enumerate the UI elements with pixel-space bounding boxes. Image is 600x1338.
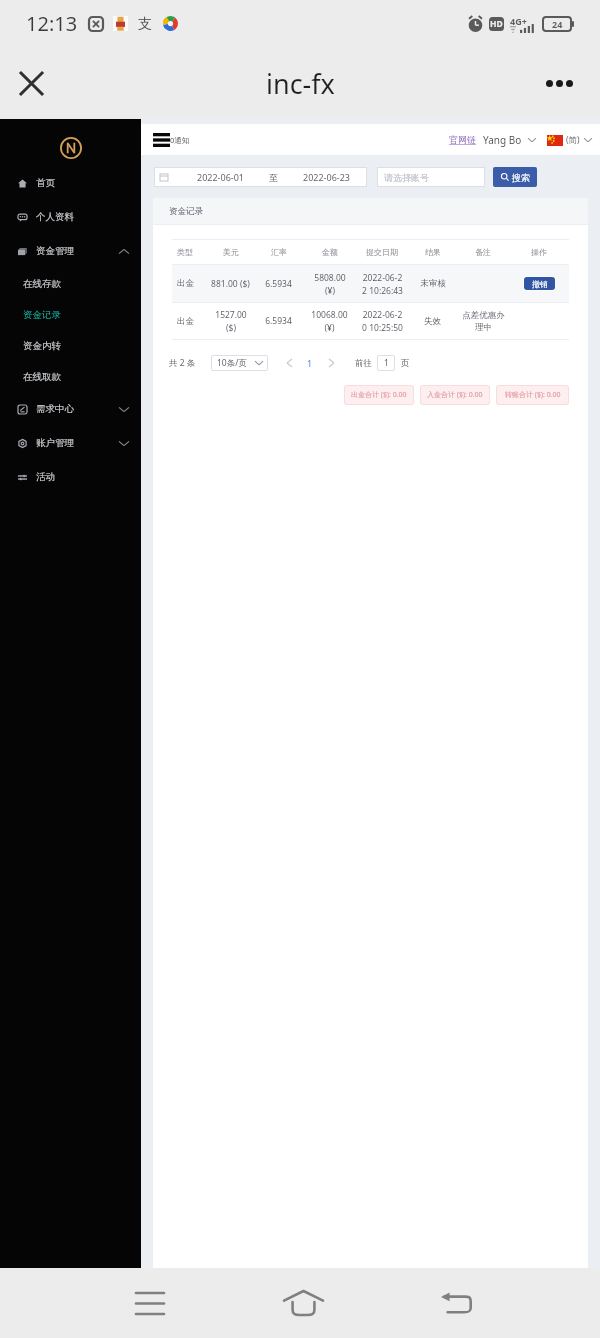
button[interactable]: 请选择账号 xyxy=(377,167,485,187)
button[interactable]: 撤销 xyxy=(524,277,555,290)
staticText: 入金合计 ($): 0.00 xyxy=(427,390,483,400)
button[interactable]: 搜索 xyxy=(493,167,537,187)
staticText: 前往 xyxy=(355,358,372,369)
staticText: 撤销 xyxy=(532,279,548,289)
staticText: 出金 xyxy=(177,316,194,327)
staticText: 2022-06-01 xyxy=(197,171,244,183)
button[interactable]: 10条/页 xyxy=(211,355,268,371)
staticText: inc-fx xyxy=(266,65,335,102)
staticText: 搜索 xyxy=(512,172,530,183)
staticText: 4G+ xyxy=(510,15,527,27)
button[interactable]: 出金合计 ($): 0.00 xyxy=(344,385,414,405)
staticText: 汇率 xyxy=(271,247,287,257)
staticText: 账户管理 xyxy=(36,437,74,449)
button[interactable]: 转账合计 ($): 0.00 xyxy=(496,385,569,405)
button[interactable]: 资金记录 xyxy=(0,299,141,330)
staticText: 资金管理 xyxy=(36,245,74,257)
button[interactable]: Recents xyxy=(73,1268,226,1338)
staticText: 类型 xyxy=(177,247,193,257)
staticText: 转账合计 ($): 0.00 xyxy=(505,390,561,400)
button[interactable]: Back xyxy=(380,1268,534,1338)
staticText: 请选择账号 xyxy=(384,172,429,183)
staticText: 资金记录 xyxy=(23,309,61,321)
staticText: 881.00 ($) xyxy=(211,278,250,290)
staticText: 支 xyxy=(138,15,152,33)
staticText: 10068.00 (¥) xyxy=(311,309,348,333)
staticText: 资金记录 xyxy=(169,206,203,217)
staticText: 失效 xyxy=(424,316,441,327)
staticText: 0通知 xyxy=(170,135,190,145)
staticText: HD xyxy=(490,18,503,30)
staticText: 5808.00 (¥) xyxy=(314,272,346,296)
button[interactable]: 2022-06-01 xyxy=(154,167,367,187)
staticText: 需求中心 xyxy=(36,403,74,415)
staticText: 操作 xyxy=(531,247,547,257)
staticText: 2022-06-2 2 10:26:43 xyxy=(362,272,403,296)
button[interactable]: Yang Bo xyxy=(483,133,536,147)
staticText: 出金合计 ($): 0.00 xyxy=(351,390,407,400)
staticText: (简) xyxy=(566,134,580,146)
staticText: 结果 xyxy=(425,247,441,257)
staticText: 1 xyxy=(384,357,389,369)
staticText: 2022-06-2 0 10:25:50 xyxy=(362,309,403,333)
staticText: 12:13 xyxy=(26,10,78,37)
button[interactable]: 需求中心 xyxy=(0,392,141,426)
button[interactable]: 官网链 xyxy=(449,134,476,145)
staticText: 在线取款 xyxy=(23,371,61,383)
staticText: 首页 xyxy=(36,177,55,189)
button[interactable]: 首页 xyxy=(0,166,141,200)
button[interactable]: Menu xyxy=(153,133,170,147)
staticText: 金额 xyxy=(322,247,338,257)
staticText: Yang Bo xyxy=(483,133,522,147)
staticText: 2022-06-23 xyxy=(303,171,350,183)
button[interactable]: (简) xyxy=(547,134,592,146)
staticText: 个人资料 xyxy=(36,211,74,223)
staticText: 24 xyxy=(552,18,563,30)
staticText: 资金内转 xyxy=(23,340,61,352)
staticText: 1 xyxy=(307,357,313,369)
staticText: 10条/页 xyxy=(217,357,247,369)
staticText: 备注 xyxy=(475,247,491,257)
button[interactable]: Home xyxy=(226,1268,380,1338)
staticText: 未审核 xyxy=(420,278,446,289)
button[interactable]: Previous page xyxy=(283,356,295,370)
staticText: 活动 xyxy=(36,471,55,483)
staticText: 1527.00 ($) xyxy=(215,309,247,333)
button[interactable]: 资金内转 xyxy=(0,330,141,361)
button[interactable]: 在线存款 xyxy=(0,268,141,299)
button[interactable]: 账户管理 xyxy=(0,426,141,460)
button[interactable]: 个人资料 xyxy=(0,200,141,234)
button[interactable]: 在线取款 xyxy=(0,361,141,392)
staticText: 出金 xyxy=(177,278,194,289)
button[interactable]: 入金合计 ($): 0.00 xyxy=(420,385,490,405)
staticText: 至 xyxy=(269,172,278,183)
staticText: 6.5934 xyxy=(265,278,292,290)
staticText: 6.5934 xyxy=(265,315,292,327)
staticText: 共 2 条 xyxy=(169,357,196,369)
button[interactable]: More options xyxy=(537,61,581,105)
button[interactable]: 资金管理 xyxy=(0,234,141,268)
button[interactable]: 活动 xyxy=(0,460,141,494)
button[interactable]: Next page xyxy=(325,356,337,370)
staticText: 美元 xyxy=(223,247,239,257)
staticText: 点差优惠办 理中 xyxy=(462,310,505,333)
staticText: 提交日期 xyxy=(366,247,398,257)
staticText: 页 xyxy=(401,358,410,369)
button[interactable]: 1 xyxy=(304,356,316,370)
button[interactable]: 1 xyxy=(377,355,395,371)
button[interactable]: Close xyxy=(11,63,51,103)
staticText: 在线存款 xyxy=(23,278,61,290)
